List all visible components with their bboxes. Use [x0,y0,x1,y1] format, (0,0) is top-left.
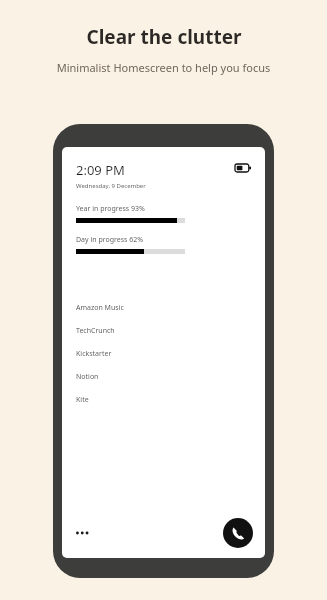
staticText: Day in progress 62% [76,235,144,245]
staticText: TechCrunch [76,326,115,336]
staticText: Kickstarter [76,349,112,359]
staticText: Year in progress 93% [76,204,145,214]
staticText: Clear the clutter [86,24,242,50]
button[interactable]: More options [76,522,102,544]
button[interactable]: TechCrunch [76,319,251,342]
staticText: Amazon Music [76,303,124,313]
staticText: Kite [76,395,89,405]
staticText: Minimalist Homescreen to help you focus [56,60,271,75]
other: Battery [235,164,251,172]
button[interactable]: Amazon Music [76,296,251,319]
staticText: 2:09 PM [76,161,125,179]
button[interactable]: Kickstarter [76,342,251,365]
staticText: Notion [76,372,99,382]
button[interactable]: Notion [76,365,251,388]
button[interactable]: Kite [76,388,251,411]
button[interactable]: Phone [223,518,253,548]
staticText: Wednesday, 9 December [76,182,146,190]
